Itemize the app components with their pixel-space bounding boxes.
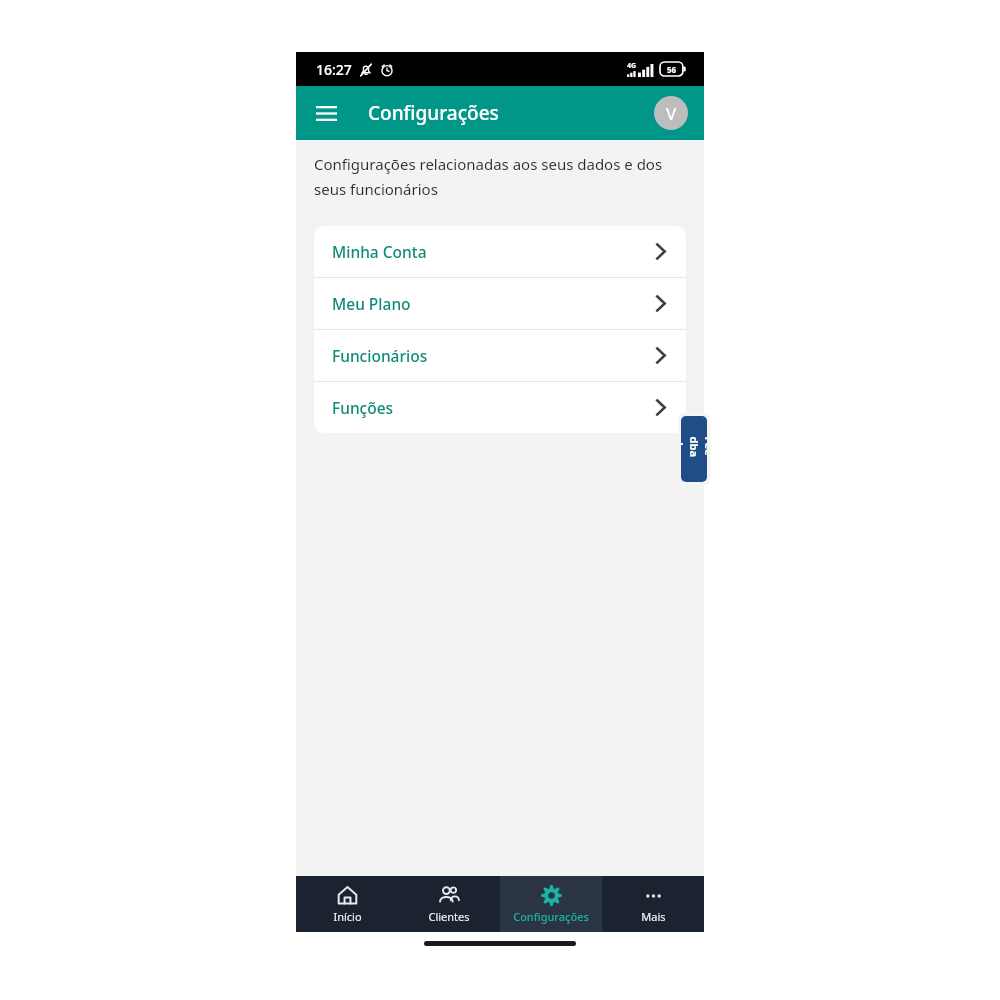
staticText: Início — [333, 909, 362, 924]
staticText: Feedback — [681, 436, 707, 462]
staticText: Clientes — [428, 909, 470, 924]
button[interactable]: Minha Conta — [314, 226, 686, 277]
button[interactable]: Meu Plano — [314, 278, 686, 329]
staticText: Meu Plano — [332, 293, 411, 314]
button[interactable]: Funcionários — [314, 330, 686, 381]
staticText: 56 — [667, 64, 677, 75]
button[interactable]: Feedback — [681, 416, 707, 482]
staticText: 4G — [627, 61, 637, 71]
button[interactable]: Clientes — [398, 876, 500, 932]
button[interactable]: Menu — [306, 93, 346, 133]
button[interactable]: Mais — [602, 876, 704, 932]
button[interactable]: Configurações — [500, 876, 602, 932]
staticText: Configurações — [513, 909, 589, 924]
button[interactable]: Funções — [314, 382, 686, 433]
staticText: Configurações relacionadas aos seus dado… — [314, 154, 684, 199]
staticText: Mais — [641, 909, 666, 924]
staticText: 16:27 — [316, 60, 352, 79]
staticText: Configurações — [368, 100, 499, 126]
staticText: Funções — [332, 397, 394, 418]
button[interactable]: Início — [296, 876, 398, 932]
button[interactable]: Perfil — [654, 96, 688, 130]
staticText: Minha Conta — [332, 241, 427, 262]
staticText: Funcionários — [332, 345, 428, 366]
staticText: V — [666, 102, 677, 125]
